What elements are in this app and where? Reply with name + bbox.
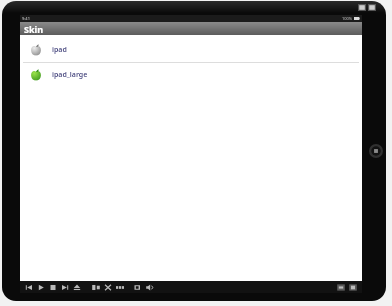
button[interactable]: ipad_large bbox=[20, 63, 362, 87]
button[interactable]: Menu bbox=[348, 283, 358, 292]
button[interactable]: Eject bbox=[72, 283, 82, 292]
staticText: 100% bbox=[342, 16, 353, 21]
button[interactable]: Zoom bbox=[103, 283, 113, 292]
button[interactable]: Next bbox=[60, 283, 70, 292]
button[interactable]: Close bbox=[368, 4, 376, 11]
staticText: 9:41 bbox=[22, 16, 30, 21]
button[interactable]: Scale bbox=[115, 283, 125, 292]
button[interactable]: ipad bbox=[20, 38, 362, 62]
button[interactable]: Back bbox=[336, 283, 346, 292]
button[interactable]: Screenshot bbox=[133, 283, 143, 292]
staticText: Skin bbox=[24, 23, 44, 35]
button[interactable]: Minimize bbox=[358, 4, 366, 11]
button[interactable]: Volume bbox=[145, 283, 155, 292]
button[interactable]: Stop bbox=[48, 283, 58, 292]
button[interactable]: Home bbox=[369, 144, 383, 158]
staticText: ipad bbox=[52, 45, 67, 55]
button[interactable]: Play bbox=[36, 283, 46, 292]
button[interactable]: Skin bbox=[20, 22, 362, 35]
staticText: ipad_large bbox=[52, 70, 88, 80]
button[interactable]: Previous bbox=[24, 283, 34, 292]
button[interactable]: Rotate bbox=[91, 283, 101, 292]
